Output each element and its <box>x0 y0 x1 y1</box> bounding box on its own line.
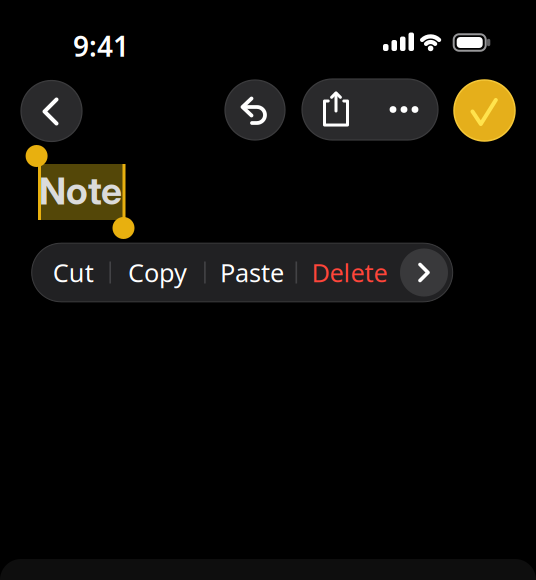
button[interactable]: Delete <box>304 243 396 301</box>
button[interactable]: Cut <box>37 243 109 301</box>
button[interactable]: Back <box>21 80 82 141</box>
staticText: Note <box>39 168 122 214</box>
button[interactable]: More actions <box>400 248 448 296</box>
staticText: 9:41 <box>73 27 129 65</box>
button[interactable]: Done <box>454 80 515 141</box>
button[interactable]: Paste <box>211 243 293 301</box>
staticText: Paste <box>220 256 284 289</box>
staticText: Cut <box>53 256 94 289</box>
staticText: Delete <box>312 256 388 289</box>
button[interactable]: Share <box>304 79 368 140</box>
button[interactable]: More <box>372 79 436 140</box>
button[interactable]: Copy <box>116 243 198 301</box>
staticText: Copy <box>128 256 187 289</box>
button[interactable]: Undo <box>225 80 285 140</box>
